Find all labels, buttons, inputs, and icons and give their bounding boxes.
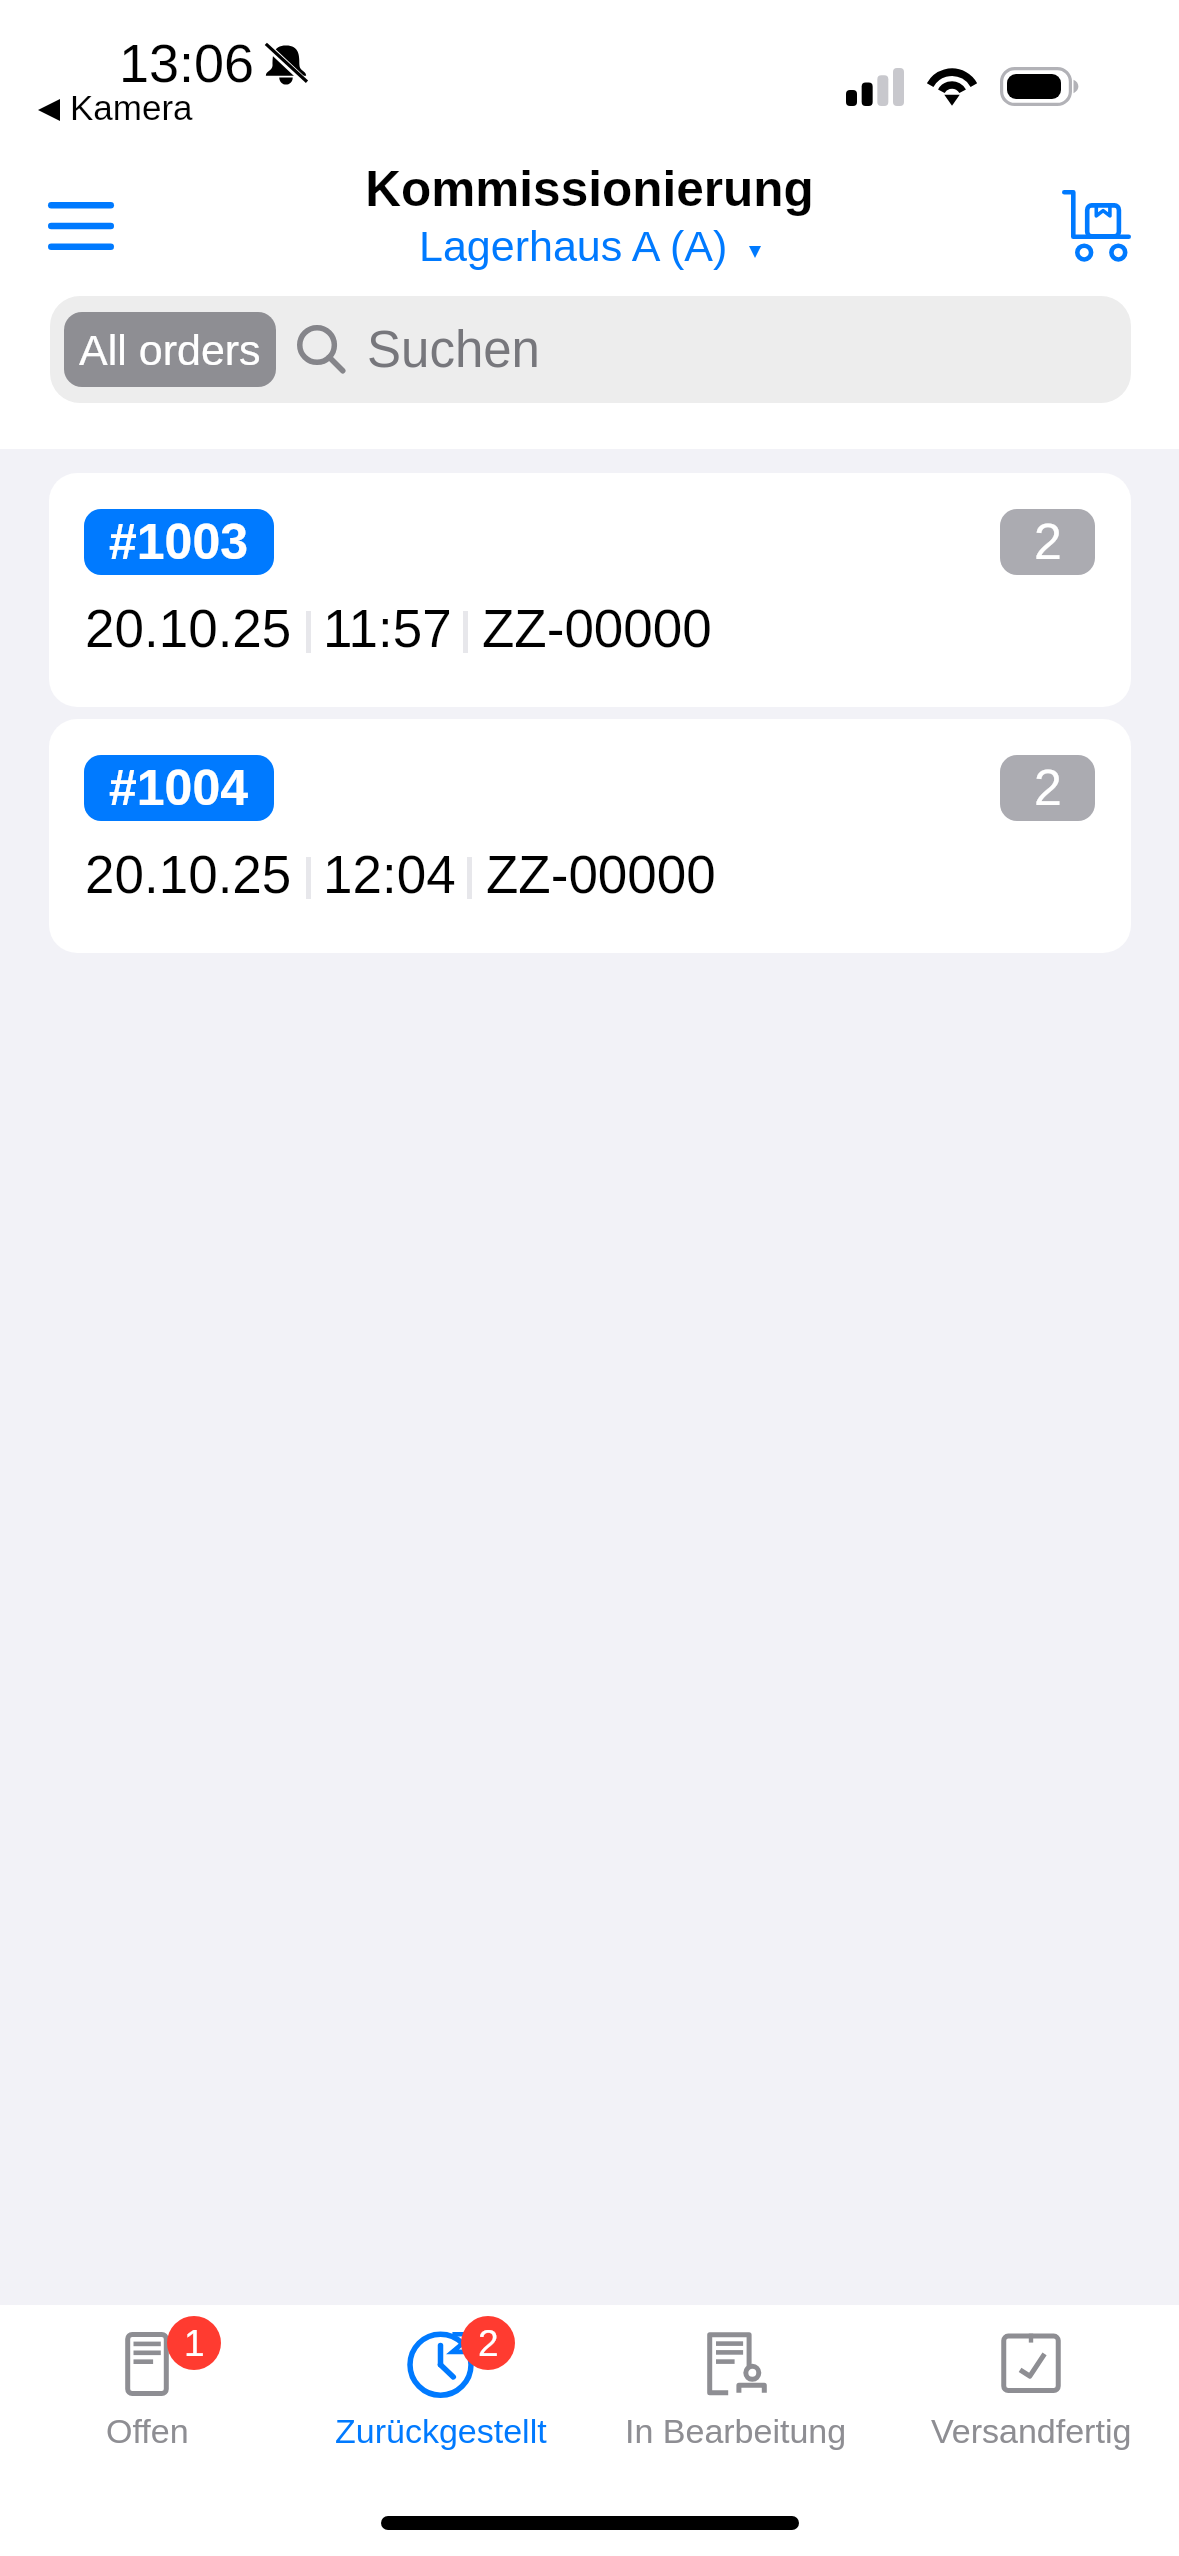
staticText: ZZ-00000	[486, 845, 716, 904]
staticText: In Bearbeitung	[625, 2412, 847, 2450]
staticText: Versandfertig	[931, 2412, 1132, 2450]
staticText: Zurückgestellt	[335, 2412, 547, 2450]
staticText: All orders	[79, 326, 261, 374]
button[interactable]: Menü	[14, 176, 148, 276]
button[interactable]: #1003	[49, 473, 1131, 707]
staticText: Lagerhaus A (A)	[419, 222, 728, 270]
staticText: 20.10.25	[85, 845, 292, 904]
button[interactable]: #1004	[49, 719, 1131, 953]
button[interactable]: Kommissionierwagen	[1036, 171, 1156, 281]
staticText: Suchen	[367, 321, 540, 378]
button[interactable]: 2	[294, 2305, 588, 2480]
staticText: #1004	[109, 760, 249, 816]
button[interactable]: All orders	[64, 312, 276, 387]
button[interactable]: In Bearbeitung	[589, 2305, 883, 2480]
staticText: Kommissionierung	[365, 161, 814, 216]
staticText: 1	[184, 2323, 205, 2364]
staticText: 13:06	[119, 33, 255, 93]
staticText: #1003	[109, 514, 249, 570]
staticText: 11:57	[323, 599, 452, 658]
button[interactable]: Lagerhaus A (A)	[419, 222, 761, 270]
staticText: ZZ-00000	[482, 599, 712, 658]
staticText: 2	[1034, 514, 1062, 570]
staticText: Kamera	[70, 88, 193, 127]
staticText: 20.10.25	[85, 599, 292, 658]
staticText: Offen	[106, 2412, 189, 2450]
staticText: 12:04	[323, 845, 456, 904]
staticText: 2	[1034, 760, 1062, 816]
button[interactable]: Versandfertig	[884, 2305, 1178, 2480]
staticText: 2	[478, 2323, 499, 2364]
button[interactable]: All orders	[50, 296, 1131, 403]
button[interactable]: 1	[0, 2305, 294, 2480]
